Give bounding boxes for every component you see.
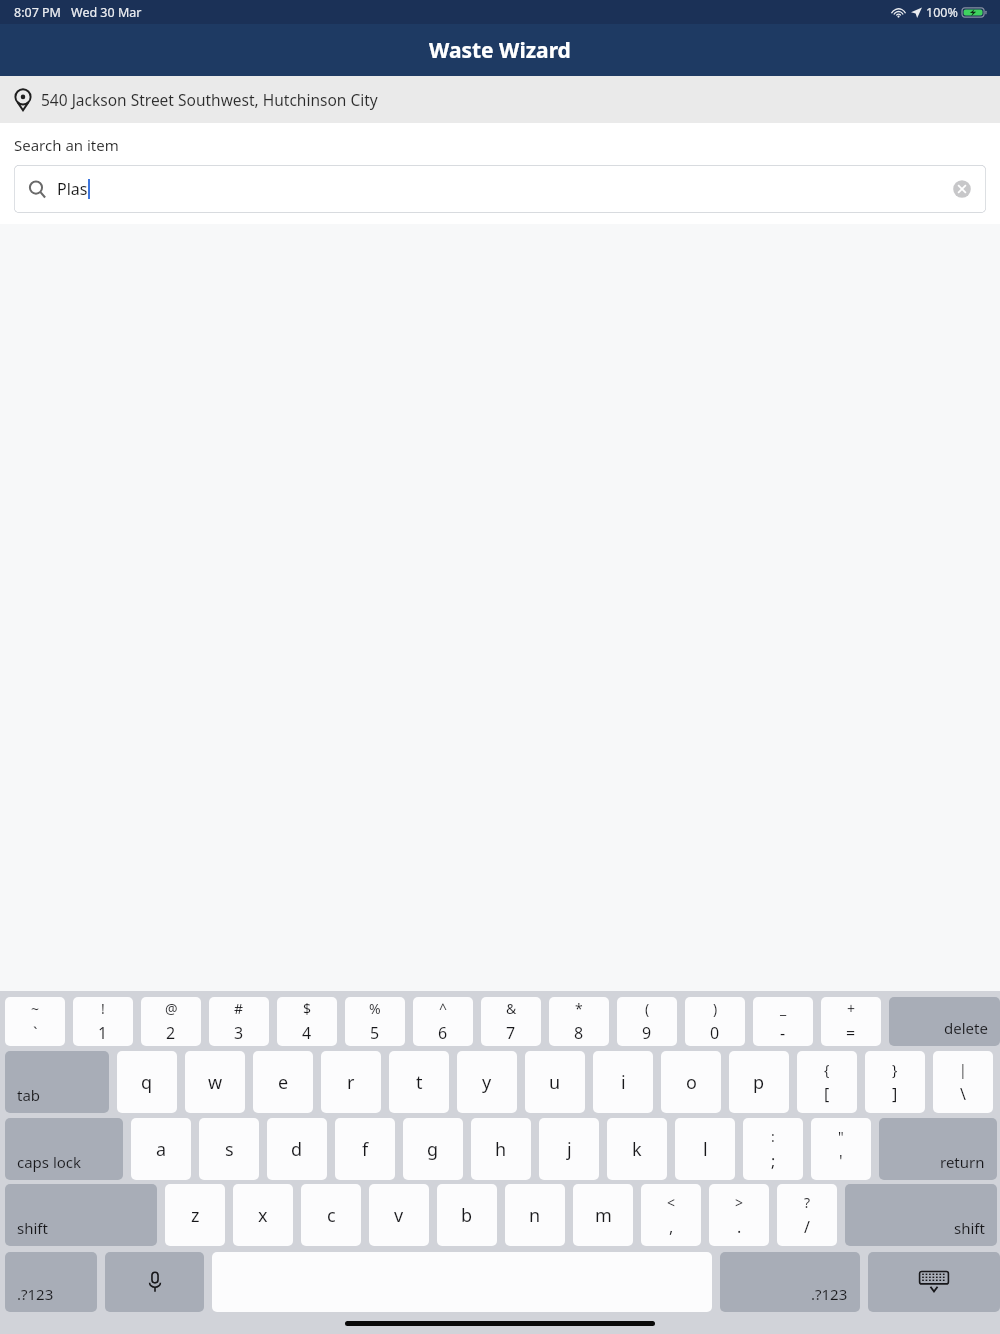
button[interactable]: ( xyxy=(617,997,677,1046)
button[interactable]: Hide keyboard xyxy=(868,1252,1000,1312)
button[interactable]: { xyxy=(797,1051,857,1113)
button[interactable]: delete xyxy=(889,997,1000,1046)
button[interactable]: ~ xyxy=(5,997,65,1046)
staticText: . xyxy=(737,1216,742,1238)
button[interactable]: o xyxy=(661,1051,721,1113)
staticText: - xyxy=(780,1022,786,1044)
button[interactable]: g xyxy=(403,1118,463,1180)
staticText: $ xyxy=(303,999,312,1018)
button[interactable]: + xyxy=(821,997,881,1046)
button[interactable]: a xyxy=(131,1118,191,1180)
staticText: z xyxy=(191,1203,200,1228)
staticText: " xyxy=(838,1127,844,1146)
button[interactable]: w xyxy=(185,1051,245,1113)
button[interactable]: .?123 xyxy=(720,1252,860,1312)
button[interactable]: Clear search xyxy=(951,178,973,200)
button[interactable]: j xyxy=(539,1118,599,1180)
button[interactable]: caps lock xyxy=(5,1118,123,1180)
staticText: s xyxy=(225,1137,234,1162)
button[interactable]: @ xyxy=(141,997,201,1046)
button[interactable]: & xyxy=(481,997,541,1046)
button[interactable]: h xyxy=(471,1118,531,1180)
button[interactable]: i xyxy=(593,1051,653,1113)
button[interactable]: b xyxy=(437,1184,497,1246)
button[interactable]: > xyxy=(709,1184,769,1246)
staticText: ] xyxy=(892,1083,898,1105)
staticText: e xyxy=(278,1070,289,1095)
button[interactable]: c xyxy=(301,1184,361,1246)
button[interactable]: : xyxy=(743,1118,803,1180)
button[interactable]: tab xyxy=(5,1051,109,1113)
button[interactable]: shift xyxy=(845,1184,997,1246)
staticText: 540 Jackson Street Southwest, Hutchinson… xyxy=(41,89,378,110)
staticText: shift xyxy=(17,1218,48,1238)
button[interactable]: u xyxy=(525,1051,585,1113)
button[interactable]: } xyxy=(865,1051,925,1113)
button[interactable]: " xyxy=(811,1118,871,1180)
staticText: ( xyxy=(645,999,650,1018)
staticText: v xyxy=(394,1203,404,1228)
staticText: return xyxy=(940,1152,985,1172)
staticText: _ xyxy=(780,999,787,1018)
staticText: i xyxy=(621,1070,626,1095)
staticText: + xyxy=(847,999,856,1018)
button[interactable]: return xyxy=(879,1118,997,1180)
staticText: 5 xyxy=(370,1022,380,1044)
staticText: ! xyxy=(101,999,105,1018)
staticText: < xyxy=(667,1193,676,1212)
staticText: [ xyxy=(824,1083,830,1105)
button[interactable]: $ xyxy=(277,997,337,1046)
button[interactable]: s xyxy=(199,1118,259,1180)
button[interactable]: | xyxy=(933,1051,993,1113)
staticText: m xyxy=(595,1203,612,1228)
button[interactable]: f xyxy=(335,1118,395,1180)
button[interactable]: v xyxy=(369,1184,429,1246)
button[interactable]: p xyxy=(729,1051,789,1113)
staticText: % xyxy=(369,999,381,1018)
staticText: j xyxy=(567,1137,572,1162)
staticText: k xyxy=(632,1137,642,1162)
button[interactable]: Dictation xyxy=(105,1252,204,1312)
staticText: # xyxy=(234,999,244,1018)
staticText: 8 xyxy=(574,1022,584,1044)
staticText: @ xyxy=(165,999,178,1018)
button[interactable]: # xyxy=(209,997,269,1046)
button[interactable]: z xyxy=(165,1184,225,1246)
staticText: 9 xyxy=(642,1022,652,1044)
staticText: \ xyxy=(960,1083,966,1105)
staticText: / xyxy=(804,1216,810,1238)
button[interactable]: ) xyxy=(685,997,745,1046)
staticText: 7 xyxy=(506,1022,516,1044)
staticText: Wed 30 Mar xyxy=(71,4,142,21)
button[interactable]: ! xyxy=(73,997,133,1046)
staticText: ' xyxy=(839,1150,843,1172)
button[interactable]: t xyxy=(389,1051,449,1113)
button[interactable]: k xyxy=(607,1118,667,1180)
button[interactable]: n xyxy=(505,1184,565,1246)
staticText: b xyxy=(461,1203,473,1228)
button[interactable]: .?123 xyxy=(5,1252,97,1312)
staticText: shift xyxy=(954,1218,985,1238)
button[interactable]: ? xyxy=(777,1184,837,1246)
button[interactable]: m xyxy=(573,1184,633,1246)
button[interactable]: % xyxy=(345,997,405,1046)
button[interactable]: x xyxy=(233,1184,293,1246)
button[interactable]: ^ xyxy=(413,997,473,1046)
button[interactable]: shift xyxy=(5,1184,157,1246)
button[interactable]: r xyxy=(321,1051,381,1113)
button[interactable]: 540 Jackson Street Southwest, Hutchinson… xyxy=(0,76,1000,123)
button[interactable]: y xyxy=(457,1051,517,1113)
button[interactable]: l xyxy=(675,1118,735,1180)
button[interactable]: Plas xyxy=(14,165,986,213)
staticText: * xyxy=(575,999,583,1018)
button[interactable]: < xyxy=(641,1184,701,1246)
staticText: 3 xyxy=(234,1022,244,1044)
button[interactable]: * xyxy=(549,997,609,1046)
button[interactable]: _ xyxy=(753,997,813,1046)
button[interactable]: d xyxy=(267,1118,327,1180)
staticText: 1 xyxy=(98,1022,108,1044)
button[interactable]: q xyxy=(117,1051,177,1113)
staticText: .?123 xyxy=(811,1284,848,1304)
button[interactable]: e xyxy=(253,1051,313,1113)
